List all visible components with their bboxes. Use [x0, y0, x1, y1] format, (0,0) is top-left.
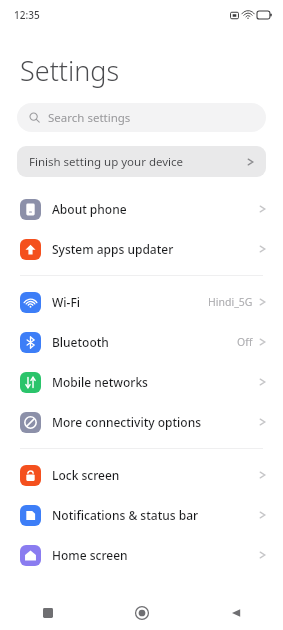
button[interactable]: System apps updater — [0, 229, 283, 269]
staticText: Search settings — [48, 110, 131, 126]
staticText: Wi-Fi — [52, 294, 208, 310]
button[interactable]: About phone — [0, 189, 283, 229]
staticText: About phone — [52, 201, 259, 217]
staticText: Finish setting up your device — [29, 154, 247, 170]
button[interactable]: Mobile networks — [0, 362, 283, 402]
staticText: More connectivity options — [52, 414, 259, 430]
staticText: Notifications & status bar — [52, 507, 259, 523]
button[interactable]: Bluetooth — [0, 322, 283, 362]
button[interactable]: Home screen — [0, 535, 283, 575]
button[interactable]: Recent apps — [0, 596, 95, 630]
staticText: Mobile networks — [52, 374, 259, 390]
staticText: Settings — [20, 52, 120, 89]
staticText: 12:35 — [14, 8, 40, 22]
button[interactable]: Notifications & status bar — [0, 495, 283, 535]
button[interactable]: Home — [95, 596, 189, 630]
staticText: Off — [237, 335, 253, 349]
staticText: Bluetooth — [52, 334, 237, 350]
button[interactable]: Back — [189, 596, 283, 630]
button[interactable]: Finish setting up your device — [17, 146, 266, 177]
button[interactable]: Lock screen — [0, 455, 283, 495]
button[interactable]: Wi-Fi — [0, 282, 283, 322]
staticText: Lock screen — [52, 467, 259, 483]
staticText: System apps updater — [52, 241, 259, 257]
button[interactable]: Search settings — [17, 103, 266, 132]
button[interactable]: More connectivity options — [0, 402, 283, 442]
staticText: Hindi_5G — [208, 295, 253, 309]
staticText: Home screen — [52, 547, 259, 563]
